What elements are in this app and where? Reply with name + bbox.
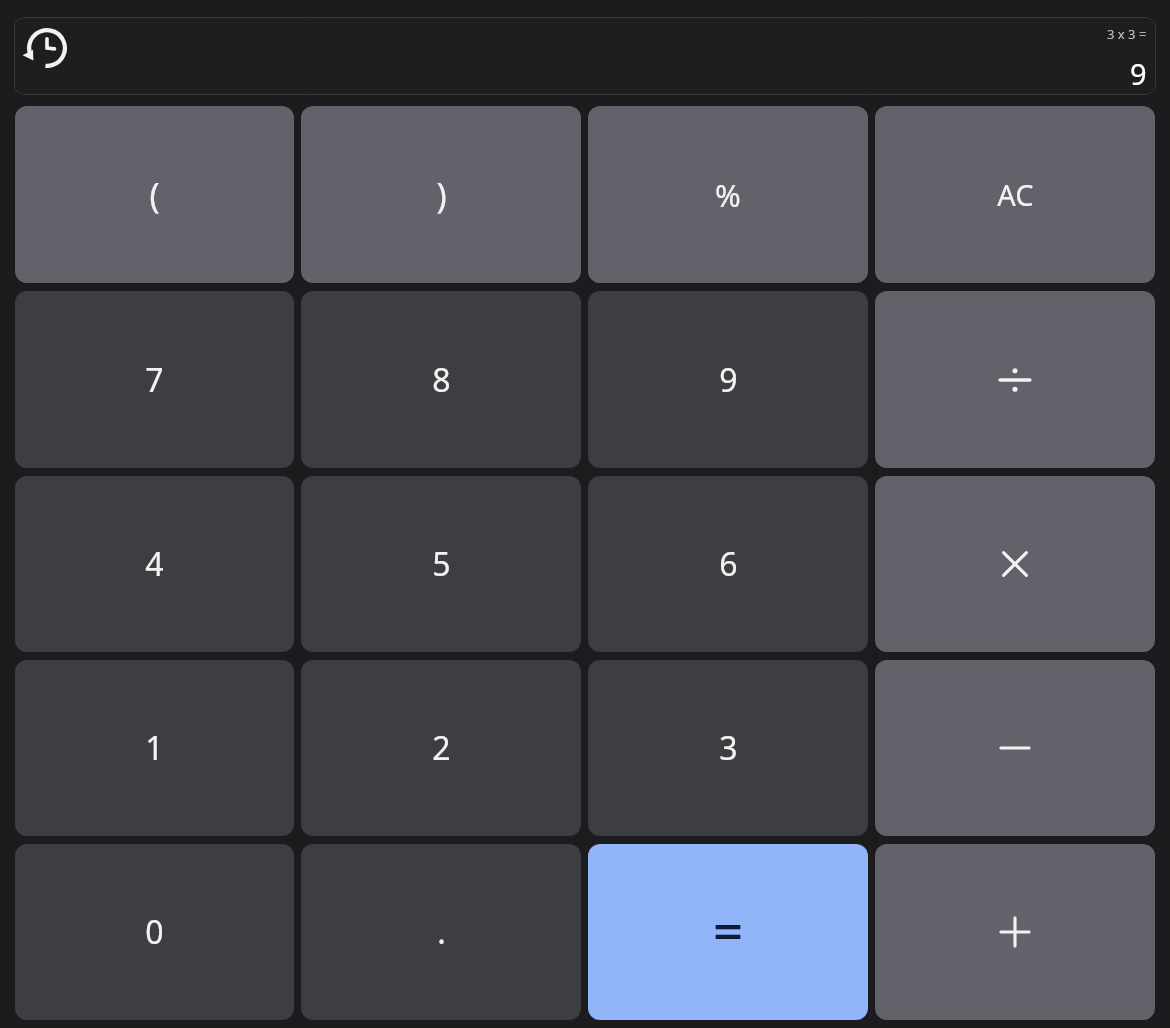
staticText: 9 bbox=[1130, 54, 1147, 93]
staticText: 8 bbox=[432, 358, 451, 402]
staticText: 5 bbox=[432, 542, 451, 586]
button[interactable]: 1 bbox=[15, 660, 294, 836]
button[interactable]: 2 bbox=[301, 660, 581, 836]
button[interactable]: 0 bbox=[15, 844, 294, 1020]
button[interactable]: . bbox=[301, 844, 581, 1020]
button[interactable]: 8 bbox=[301, 291, 581, 468]
staticText: 7 bbox=[145, 358, 164, 402]
button[interactable]: Divide bbox=[875, 291, 1155, 468]
staticText: . bbox=[437, 910, 446, 954]
staticText: % bbox=[715, 174, 741, 216]
staticText: 9 bbox=[719, 358, 738, 402]
staticText: 0 bbox=[145, 910, 164, 954]
staticText: ) bbox=[436, 172, 447, 218]
button[interactable]: ) bbox=[301, 106, 581, 283]
staticText: 6 bbox=[719, 542, 738, 586]
other: History bbox=[22, 23, 72, 73]
staticText: 1 bbox=[145, 726, 164, 770]
staticText: ( bbox=[149, 172, 160, 218]
button[interactable]: 4 bbox=[15, 476, 294, 652]
button[interactable]: Equals bbox=[588, 844, 868, 1020]
button[interactable]: AC bbox=[875, 106, 1155, 283]
button[interactable]: % bbox=[588, 106, 868, 283]
staticText: 4 bbox=[145, 542, 164, 586]
button[interactable]: 9 bbox=[588, 291, 868, 468]
staticText: 3 bbox=[719, 726, 738, 770]
button[interactable]: ( bbox=[15, 106, 294, 283]
button[interactable]: 3 bbox=[588, 660, 868, 836]
staticText: 3 x 3 = bbox=[1107, 25, 1147, 43]
button[interactable]: 6 bbox=[588, 476, 868, 652]
button[interactable]: 7 bbox=[15, 291, 294, 468]
staticText: 2 bbox=[432, 726, 451, 770]
button[interactable]: History bbox=[22, 23, 72, 73]
button[interactable]: Plus bbox=[875, 844, 1155, 1020]
button[interactable]: Minus bbox=[875, 660, 1155, 836]
staticText: AC bbox=[997, 175, 1034, 214]
button[interactable]: 5 bbox=[301, 476, 581, 652]
button[interactable]: Multiply bbox=[875, 476, 1155, 652]
